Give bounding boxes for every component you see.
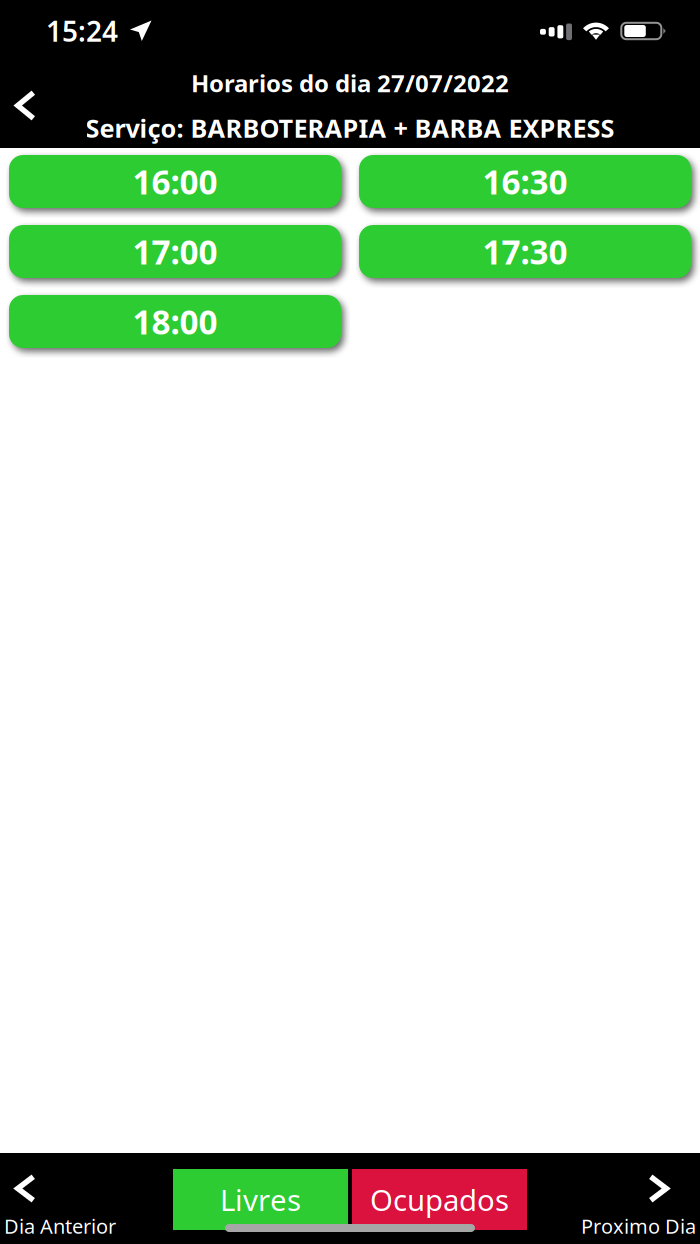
- button[interactable]: Back: [0, 0, 58, 139]
- staticText: Ocupados: [370, 1180, 509, 1219]
- staticText: 16:00: [132, 159, 217, 204]
- staticText: 16:30: [482, 159, 567, 204]
- button[interactable]: Ocupados: [352, 1169, 527, 1230]
- staticText: 18:00: [132, 299, 217, 344]
- staticText: Proximo Dia: [581, 1213, 696, 1239]
- staticText: Dia Anterior: [4, 1213, 116, 1239]
- staticText: 15:24: [46, 12, 118, 50]
- button[interactable]: Livres: [173, 1169, 348, 1230]
- button[interactable]: Proximo Dia: [530, 1153, 700, 1244]
- button[interactable]: Dia Anterior: [0, 1153, 170, 1244]
- staticText: 17:00: [132, 229, 217, 274]
- staticText: Horarios do dia 27/07/2022: [191, 67, 509, 99]
- button[interactable]: 17:30: [359, 225, 691, 278]
- button[interactable]: 18:00: [9, 295, 341, 348]
- staticText: Livres: [220, 1180, 301, 1219]
- button[interactable]: 16:30: [359, 155, 691, 208]
- button[interactable]: 16:00: [9, 155, 341, 208]
- staticText: 17:30: [482, 229, 567, 274]
- button[interactable]: 17:00: [9, 225, 341, 278]
- staticText: Serviço: BARBOTERAPIA + BARBA EXPRESS: [85, 111, 614, 145]
